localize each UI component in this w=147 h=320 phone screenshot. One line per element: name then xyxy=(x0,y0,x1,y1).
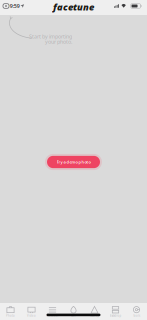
staticText: Retouch xyxy=(46,314,58,317)
staticText: Video xyxy=(27,314,36,317)
staticText: Skin xyxy=(71,314,76,317)
button[interactable]: Backdrop xyxy=(105,305,126,318)
staticText: Tools xyxy=(133,314,140,317)
staticText: facetune xyxy=(53,1,94,13)
button[interactable]: Makeup xyxy=(84,305,105,318)
staticText: your photo. xyxy=(45,38,72,45)
staticText: Backdrop xyxy=(109,314,121,317)
staticText: Try a demo photo xyxy=(56,159,90,165)
button[interactable]: Tools xyxy=(126,305,147,318)
button[interactable]: Try a demo photo xyxy=(45,154,102,170)
button[interactable]: Retouch xyxy=(42,305,63,318)
staticText: Start by importing xyxy=(29,33,72,40)
staticText: Makeup xyxy=(89,314,99,317)
staticText: 9:59 xyxy=(10,2,20,10)
staticText: Photo xyxy=(6,314,15,317)
button[interactable]: Video xyxy=(21,305,42,318)
button[interactable]: Skin xyxy=(63,305,84,318)
button[interactable]: Photo xyxy=(0,305,21,318)
